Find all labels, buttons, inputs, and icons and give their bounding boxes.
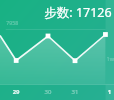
button[interactable]: Steps chart, 17126 steps (0, 0, 114, 100)
